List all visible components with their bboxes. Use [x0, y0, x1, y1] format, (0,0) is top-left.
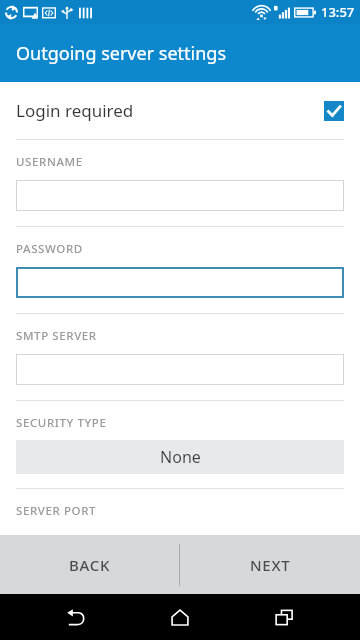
staticText: None [160, 446, 201, 468]
staticText: Outgoing server settings [16, 41, 227, 66]
button[interactable]: Back [48, 594, 104, 640]
button[interactable] [16, 180, 344, 211]
staticText: SECURITY TYPE [16, 415, 107, 431]
button[interactable] [16, 354, 344, 385]
button[interactable]: NEXT [180, 535, 360, 594]
staticText: USERNAME [16, 154, 83, 170]
button[interactable]: Home [152, 594, 208, 640]
staticText: BACK [69, 555, 111, 575]
staticText: PASSWORD [16, 241, 83, 257]
button[interactable]: Login required [0, 82, 360, 139]
button[interactable]: Recent apps [256, 594, 312, 640]
button[interactable]: BACK [0, 535, 179, 594]
staticText: Login required [16, 99, 134, 122]
staticText: SERVER PORT [16, 503, 97, 519]
button[interactable]: None [16, 440, 344, 474]
staticText: 13:57 [321, 3, 355, 21]
staticText: NEXT [250, 555, 291, 575]
button[interactable] [16, 267, 344, 298]
staticText: SMTP SERVER [16, 328, 97, 344]
